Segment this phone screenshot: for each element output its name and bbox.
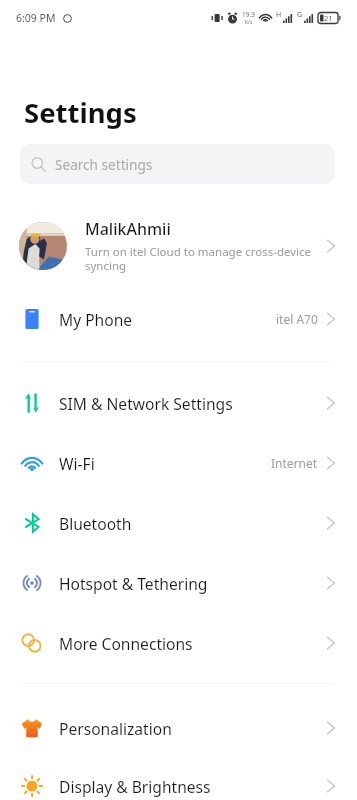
staticText: Bluetooth (59, 513, 327, 534)
staticText: Search settings (55, 155, 153, 174)
button[interactable]: Personalization (0, 698, 357, 758)
staticText: 19.3 (242, 10, 255, 19)
staticText: G (297, 10, 303, 20)
staticText: 21 (324, 13, 333, 23)
staticText: Display & Brightness (59, 776, 327, 797)
staticText: Wi-Fi (59, 453, 271, 474)
staticText: H (276, 10, 282, 20)
staticText: Personalization (59, 718, 327, 739)
button[interactable]: MalikAhmii (0, 210, 357, 282)
button[interactable]: Hotspot & Tethering (0, 553, 357, 613)
staticText: Settings (24, 94, 137, 131)
button[interactable]: Bluetooth (0, 493, 357, 553)
button[interactable]: More Connections (0, 613, 357, 673)
button[interactable]: SIM & Network Settings (0, 373, 357, 433)
staticText: SIM & Network Settings (59, 393, 327, 414)
staticText: Hotspot & Tethering (59, 573, 327, 594)
staticText: 6:09 PM (16, 11, 56, 25)
staticText: More Connections (59, 633, 327, 654)
button[interactable]: Display & Brightness (0, 756, 357, 800)
button[interactable]: My Phone (0, 289, 357, 349)
staticText: K/s (245, 19, 253, 26)
staticText: My Phone (59, 309, 276, 330)
button[interactable]: Search settings (20, 144, 335, 184)
button[interactable]: Wi-Fi (0, 433, 357, 493)
staticText: Turn on itel Cloud to manage cross-devic… (85, 244, 321, 274)
staticText: Internet (271, 455, 318, 471)
staticText: itel A70 (276, 311, 318, 327)
staticText: MalikAhmii (85, 218, 171, 240)
